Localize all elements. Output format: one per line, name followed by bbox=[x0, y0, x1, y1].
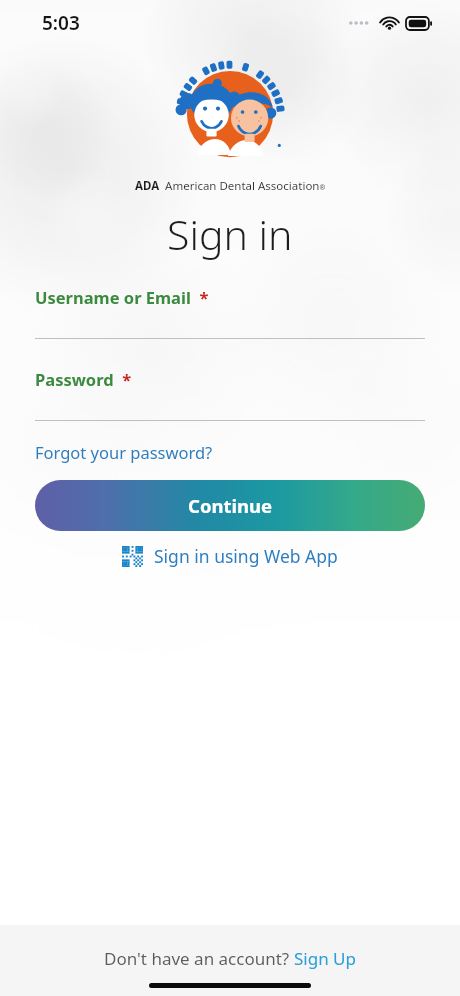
staticText: Sign in using Web App bbox=[154, 544, 338, 568]
staticText: ADA American Dental Association® bbox=[135, 178, 326, 194]
button[interactable]: Continue bbox=[35, 480, 425, 531]
staticText: Sign Up bbox=[294, 947, 356, 970]
staticText: Don't have an account? bbox=[104, 947, 294, 970]
staticText: Sign in bbox=[167, 206, 293, 262]
staticText: Continue bbox=[188, 493, 273, 518]
staticText: Password * bbox=[35, 368, 132, 390]
staticText: Forgot your password? bbox=[35, 441, 213, 463]
button[interactable]: Don't have an account? bbox=[104, 947, 356, 970]
button[interactable]: Scan QR code bbox=[116, 538, 344, 574]
staticText: Username or Email * bbox=[35, 286, 209, 308]
button[interactable]: Forgot your password? bbox=[35, 441, 213, 463]
staticText: 5:03 bbox=[42, 10, 80, 36]
other: Scan QR code bbox=[122, 546, 143, 567]
